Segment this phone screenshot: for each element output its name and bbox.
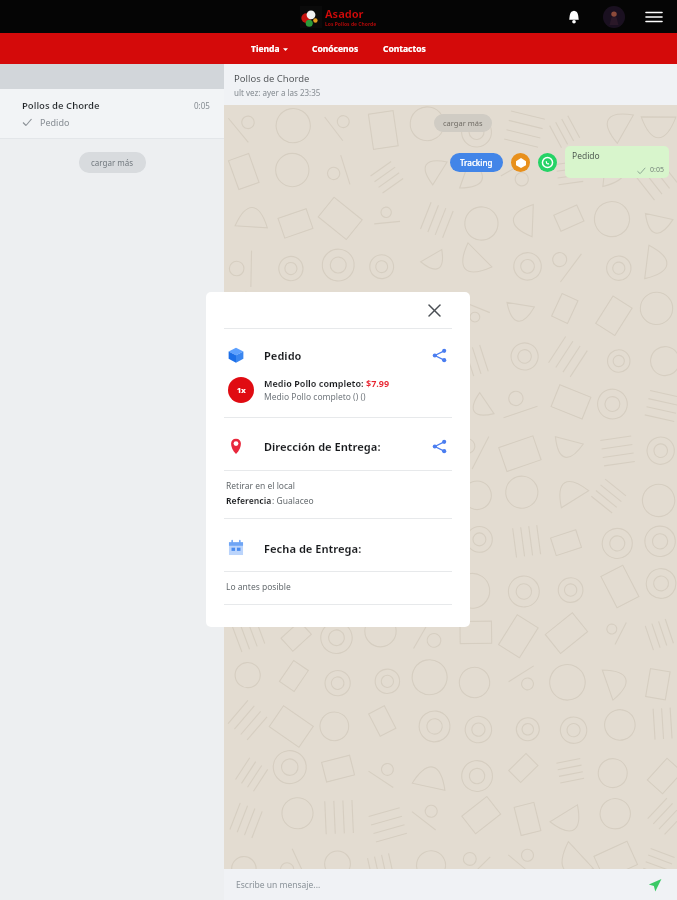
- button[interactable]: Perfil: [603, 6, 625, 28]
- staticText: Medio Pollo completo () (): [264, 391, 366, 403]
- button[interactable]: Tracking: [450, 153, 503, 172]
- button[interactable]: Cerrar: [424, 300, 444, 320]
- staticText: cargar más: [443, 118, 483, 128]
- button[interactable]: Pedido: [206, 343, 470, 367]
- staticText: cargar más: [91, 157, 134, 168]
- staticText: Tienda: [251, 43, 280, 55]
- button[interactable]: cargar más: [79, 152, 146, 173]
- staticText: Fecha de Entrega:: [264, 541, 362, 556]
- button[interactable]: Notificaciones: [563, 6, 585, 28]
- button[interactable]: Compartir pedido: [430, 346, 448, 364]
- button[interactable]: Compartir dirección: [430, 437, 448, 455]
- staticText: Pollos de Chorde: [22, 99, 100, 112]
- staticText: Los Pollos de Chorde: [325, 21, 377, 28]
- button[interactable]: Pedido: [511, 153, 530, 172]
- staticText: Pedido: [40, 116, 70, 128]
- staticText: Tracking: [460, 157, 493, 168]
- staticText: Lo antes posible: [226, 581, 291, 593]
- staticText: Pollos de Chorde: [234, 72, 310, 85]
- button[interactable]: Fecha de Entrega:: [206, 537, 470, 559]
- staticText: $7.99: [366, 377, 390, 389]
- button[interactable]: Menú: [643, 6, 665, 28]
- staticText: : Gualaceo: [272, 495, 314, 507]
- staticText: 0:05: [194, 100, 210, 111]
- button[interactable]: Escribe un mensaje...: [236, 879, 645, 891]
- staticText: Medio Pollo completo:: [264, 377, 366, 389]
- button[interactable]: Enviar: [645, 875, 665, 895]
- button[interactable]: Pedido: [565, 146, 669, 178]
- staticText: 0:05: [650, 165, 664, 175]
- staticText: Pedido: [572, 150, 600, 162]
- staticText: ult vez: ayer a las 23:35: [234, 87, 321, 98]
- staticText: Dirección de Entrega:: [264, 439, 381, 454]
- staticText: Conócenos: [312, 43, 359, 55]
- staticText: Retirar en el local: [226, 480, 296, 492]
- staticText: Asador: [325, 6, 364, 21]
- button[interactable]: Contactos: [381, 39, 428, 59]
- staticText: Pedido: [264, 348, 302, 363]
- button[interactable]: WhatsApp: [538, 153, 557, 172]
- staticText: Escribe un mensaje...: [236, 879, 321, 891]
- staticText: Contactos: [383, 43, 426, 55]
- staticText: Referencia: [226, 495, 272, 507]
- button[interactable]: cargar más: [434, 114, 492, 132]
- button[interactable]: Conócenos: [310, 39, 361, 59]
- button[interactable]: Tienda: [249, 39, 290, 59]
- staticText: 1x: [237, 385, 246, 395]
- button[interactable]: Dirección de Entrega:: [206, 434, 470, 458]
- button[interactable]: Pollos de Chorde: [0, 89, 224, 138]
